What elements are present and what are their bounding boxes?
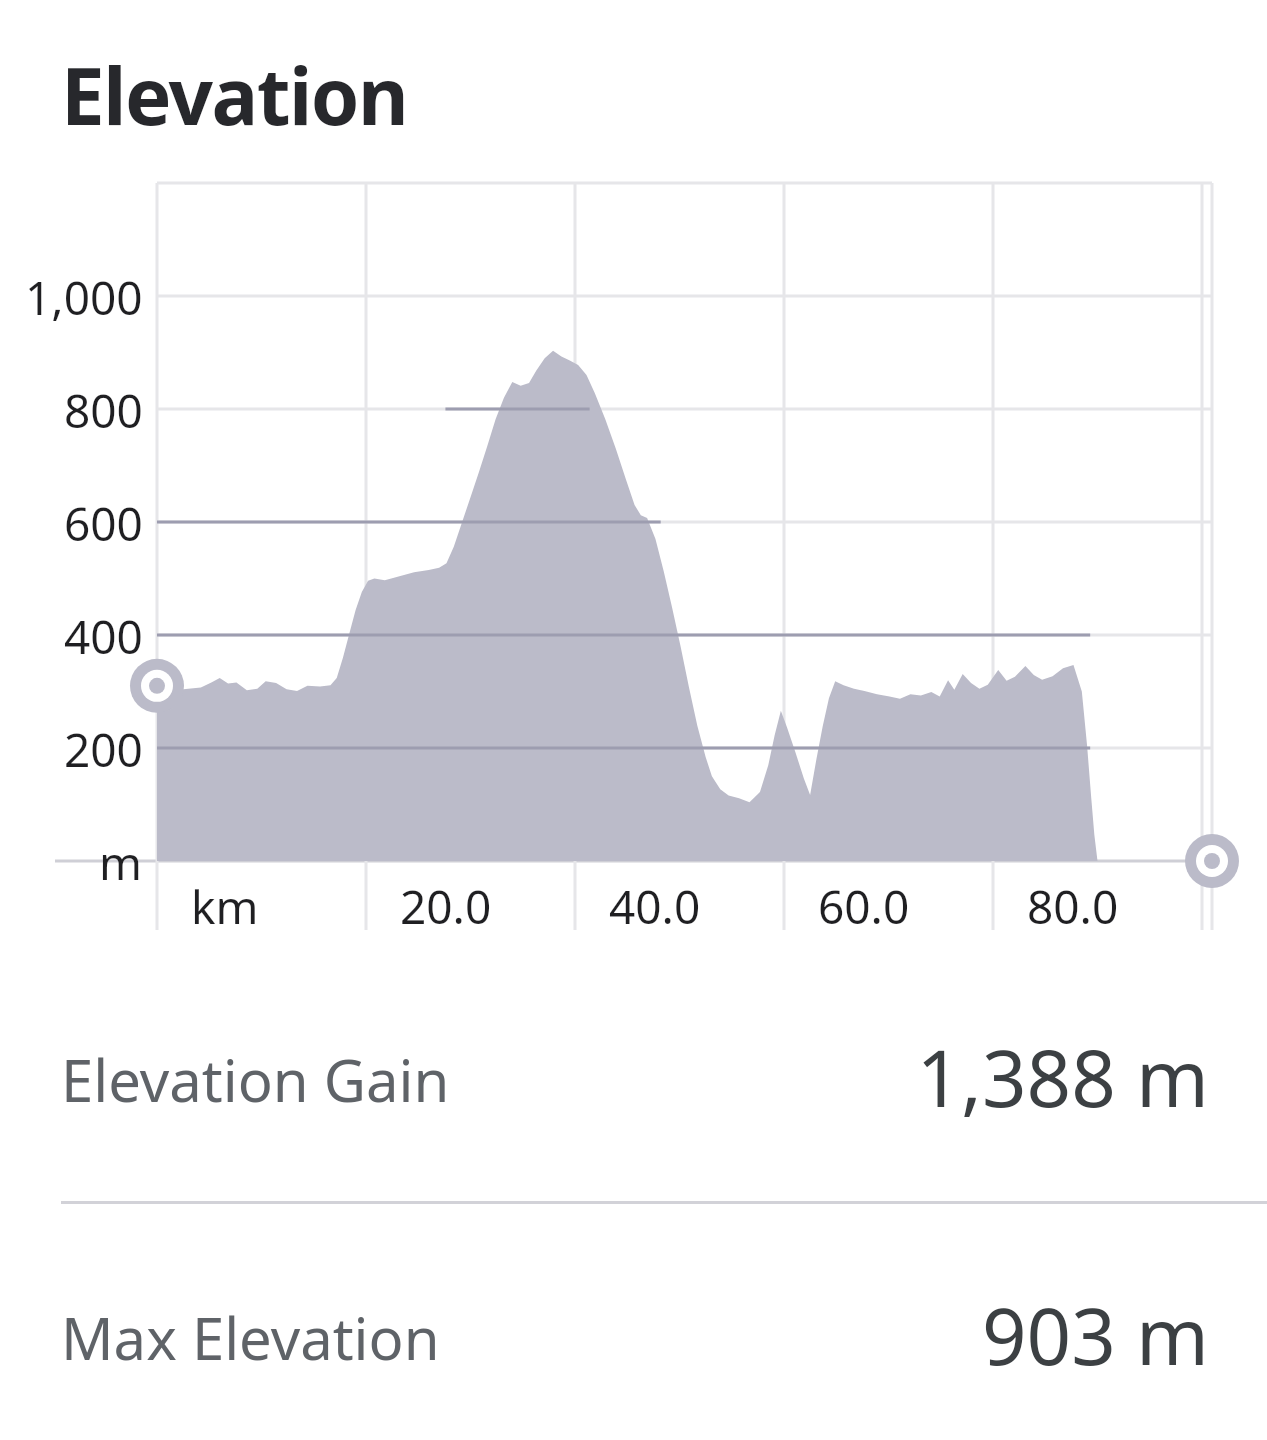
staticText: Max Elevation: [61, 1298, 440, 1377]
staticText: 800: [64, 379, 143, 442]
staticText: 80.0: [1027, 875, 1119, 938]
staticText: 400: [64, 605, 143, 668]
staticText: Elevation: [61, 42, 408, 148]
staticText: 40.0: [609, 875, 701, 938]
staticText: 903 m: [981, 1282, 1209, 1388]
staticText: 200: [64, 718, 143, 781]
staticText: 60.0: [818, 875, 910, 938]
button[interactable]: Max Elevation: [0, 1258, 1267, 1402]
staticText: 20.0: [400, 875, 492, 938]
staticText: 1,388 m: [916, 1024, 1209, 1130]
staticText: km: [191, 875, 259, 938]
staticText: Elevation Gain: [61, 1040, 450, 1119]
button[interactable]: Elevation Gain: [0, 1000, 1267, 1144]
staticText: 600: [64, 492, 143, 555]
staticText: 1,000: [25, 266, 143, 329]
staticText: m: [99, 831, 143, 894]
